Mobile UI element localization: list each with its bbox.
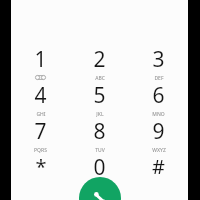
button[interactable]: 7 — [11, 117, 70, 153]
staticText: ABC — [95, 75, 105, 81]
staticText: 3 — [152, 45, 165, 74]
staticText: WXYZ — [152, 147, 166, 153]
button[interactable]: 9 — [129, 117, 188, 153]
button[interactable]: * — [11, 153, 70, 189]
button[interactable]: 3 — [129, 45, 188, 81]
staticText: 0 — [93, 153, 106, 182]
staticText: * — [35, 153, 47, 180]
staticText: 2 — [93, 45, 106, 74]
button[interactable]: 2 — [70, 45, 129, 81]
staticText: 7 — [34, 117, 47, 146]
button[interactable]: 1 — [11, 45, 70, 81]
button[interactable]: 0 — [70, 153, 129, 189]
staticText: TUV — [95, 147, 105, 153]
staticText: 8 — [93, 117, 106, 146]
staticText: 9 — [152, 117, 165, 146]
staticText: 4 — [34, 81, 47, 110]
button[interactable]: 4 — [11, 81, 70, 117]
staticText: 6 — [152, 81, 165, 110]
staticText: MNO — [152, 111, 165, 117]
button[interactable]: # — [129, 153, 188, 189]
button[interactable]: 8 — [70, 117, 129, 153]
button[interactable]: 5 — [70, 81, 129, 117]
staticText: 1 — [34, 45, 47, 74]
staticText: # — [152, 153, 165, 180]
staticText: PQRS — [34, 147, 47, 153]
staticText: DEF — [154, 75, 164, 81]
staticText: JKL — [96, 111, 104, 117]
staticText: GHI — [36, 111, 46, 117]
staticText: 5 — [93, 81, 106, 110]
button[interactable]: 6 — [129, 81, 188, 117]
button[interactable]: Call — [79, 177, 121, 200]
